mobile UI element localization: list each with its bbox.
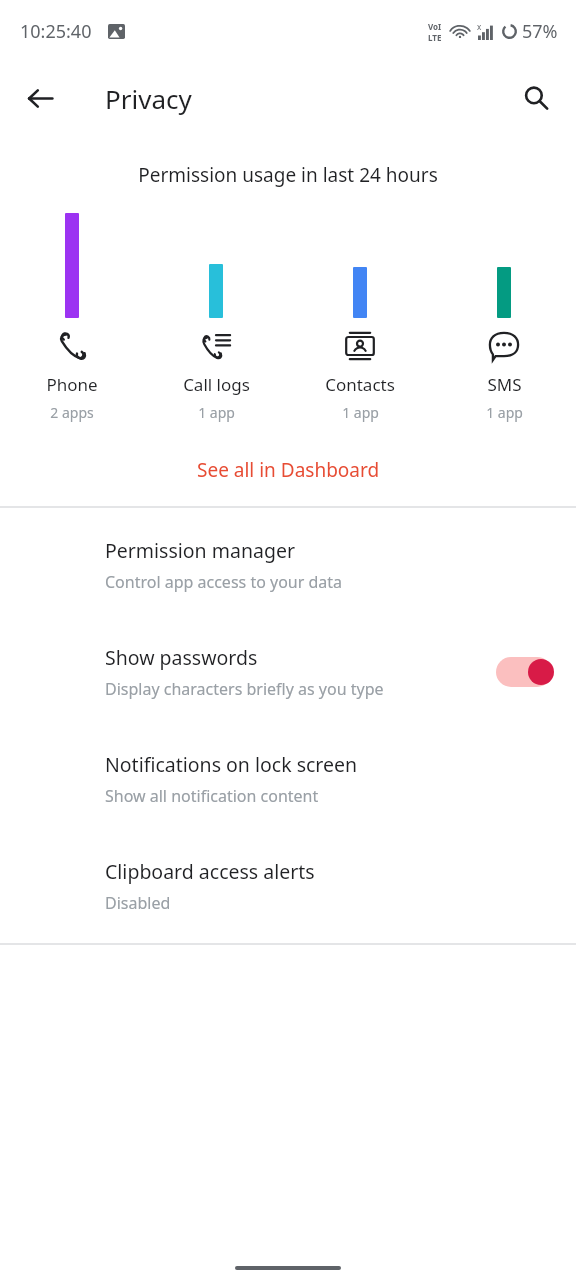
staticText: Display characters briefly as you type [105,678,384,700]
button[interactable]: Permission manager [0,511,576,618]
staticText: Call logs [183,373,250,396]
staticText: Permission usage in last 24 hours [0,162,576,188]
button[interactable]: SMS [432,212,576,422]
staticText: 1 app [198,403,235,422]
staticText: Contacts [325,373,395,396]
button[interactable]: Phone [0,212,144,422]
button[interactable]: Back [12,70,68,126]
staticText: LTE [428,32,442,43]
staticText: Privacy [105,81,192,116]
button[interactable]: Notifications on lock screen [0,725,576,832]
staticText: 1 app [342,403,379,422]
staticText: 57% [522,19,558,44]
staticText: See all in Dashboard [197,457,380,483]
button[interactable]: Clipboard access alerts [0,832,576,939]
staticText: Show passwords [105,644,258,671]
button[interactable]: Show passwords [0,618,576,725]
staticText: VoI [428,21,442,32]
staticText: 2 apps [50,403,94,422]
button[interactable]: Call logs [144,212,288,422]
staticText: 1 app [486,403,523,422]
button[interactable]: See all in Dashboard [0,444,576,496]
staticText: Show all notification content [105,785,319,807]
staticText: Notifications on lock screen [105,751,358,778]
button[interactable]: Show passwords toggle [492,652,556,692]
staticText: Clipboard access alerts [105,858,315,885]
staticText: Disabled [105,892,171,914]
staticText: x [477,21,482,32]
button[interactable]: Contacts [288,212,432,422]
staticText: SMS [487,373,522,396]
staticText: Phone [46,373,98,396]
staticText: Permission manager [105,537,295,564]
staticText: Control app access to your data [105,571,343,593]
button[interactable]: Search [508,70,564,126]
staticText: 10:25:40 [20,19,92,44]
